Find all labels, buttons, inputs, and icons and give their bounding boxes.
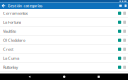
button[interactable]: La Fortuna	[0, 18, 128, 27]
button[interactable]: Ol Cledolaro	[0, 36, 128, 45]
button[interactable]: Crest	[0, 45, 128, 54]
staticText: Crest	[3, 47, 13, 52]
staticText: Ol Cledolaro	[3, 38, 25, 43]
button[interactable]: Recents	[94, 76, 104, 78]
button[interactable]: Back	[0, 4, 8, 8]
button[interactable]: More options	[123, 4, 128, 7]
staticText: Gestión categorías	[8, 3, 43, 8]
staticText: La Fortuna	[3, 20, 21, 25]
staticText: Cerramientos	[3, 11, 28, 16]
staticText: Vaultlite	[3, 29, 16, 34]
button[interactable]: Vaultlite	[0, 27, 128, 36]
staticText: La Cuma	[3, 56, 19, 61]
staticText: Ruttonlay	[3, 65, 18, 70]
button[interactable]: Ruttonlay	[0, 63, 128, 72]
button[interactable]: Home	[59, 75, 69, 78]
button[interactable]: Back	[24, 75, 35, 78]
button[interactable]: La Cuma	[0, 54, 128, 63]
button[interactable]: Search	[118, 5, 123, 7]
button[interactable]: Cerramientos	[0, 9, 128, 18]
